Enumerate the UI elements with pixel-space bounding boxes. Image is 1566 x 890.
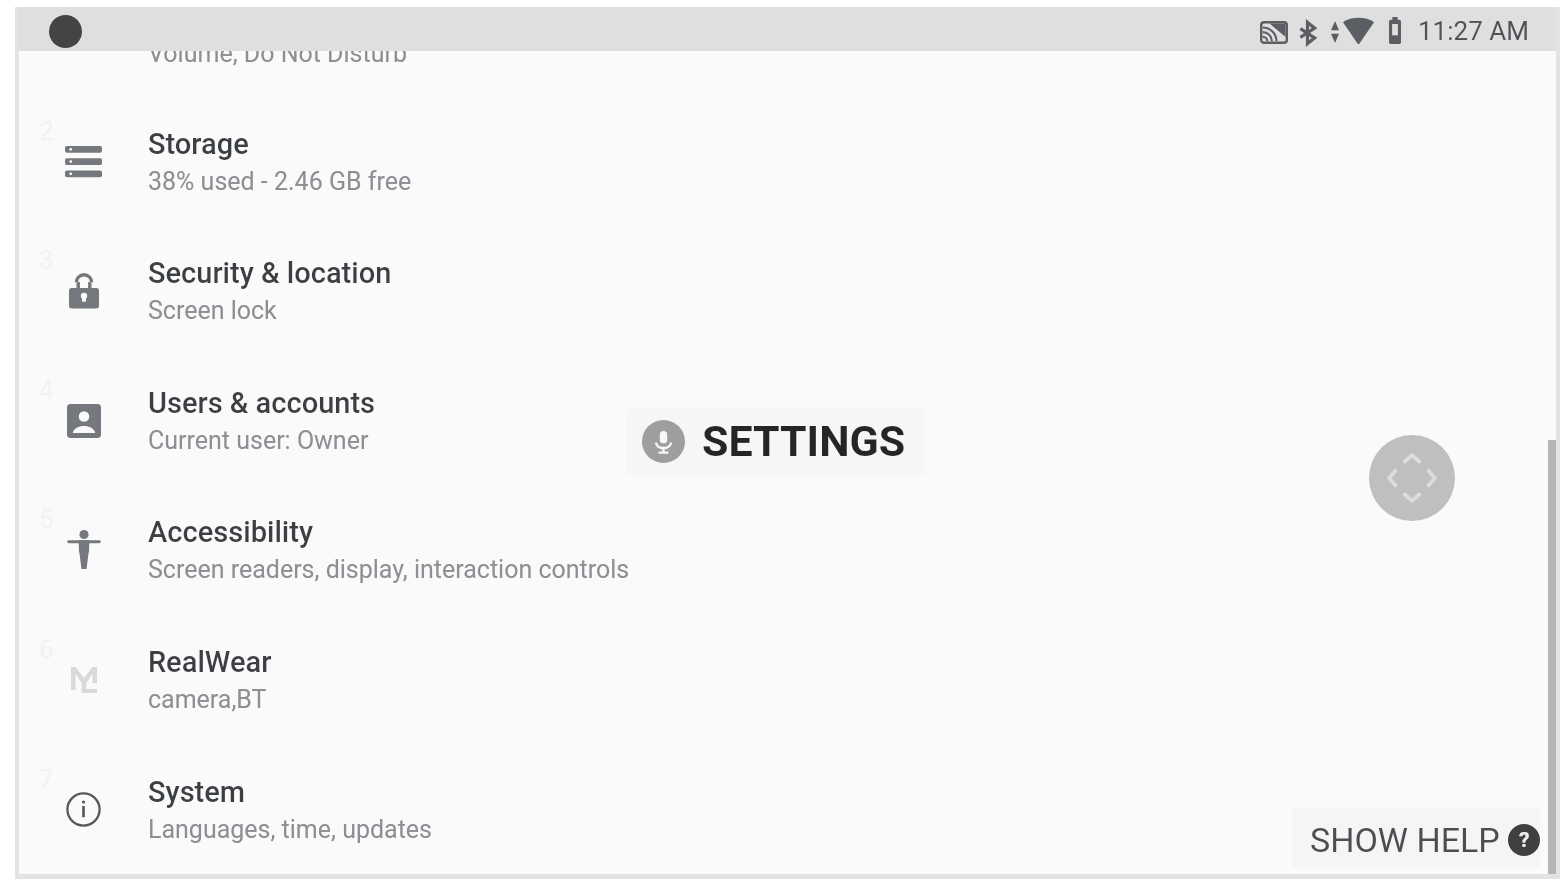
button[interactable]: 2 — [19, 134, 1556, 264]
staticText: 5 — [39, 504, 54, 534]
staticText: 2 — [39, 116, 54, 146]
staticText: Accessibility — [148, 515, 313, 549]
staticText: 4 — [39, 375, 54, 405]
staticText: System — [148, 775, 246, 809]
staticText: Security & location — [148, 256, 392, 290]
button[interactable]: 6 — [19, 652, 1556, 782]
button[interactable]: SETTINGS — [642, 416, 906, 466]
staticText: 38% used - 2.46 GB free — [148, 167, 412, 196]
staticText: Screen readers, display, interaction con… — [148, 555, 630, 584]
button[interactable]: Navigation pad — [1369, 435, 1455, 521]
staticText: camera,BT — [148, 685, 267, 714]
staticText: SHOW HELP — [1310, 820, 1500, 860]
staticText: Volume, Do Not Disturb — [148, 39, 407, 68]
staticText: Languages, time, updates — [148, 815, 433, 844]
button[interactable]: 7 — [19, 782, 1556, 874]
staticText: RealWear — [148, 645, 272, 679]
button[interactable]: Profile — [49, 15, 82, 48]
staticText: 6 — [39, 634, 54, 664]
button[interactable]: SHOW HELP — [1310, 813, 1540, 867]
staticText: 11:27 AM — [1418, 16, 1529, 46]
staticText: SETTINGS — [702, 416, 906, 466]
button[interactable]: 5 — [19, 522, 1556, 652]
staticText: Screen lock — [148, 296, 277, 325]
staticText: Storage — [148, 127, 249, 161]
staticText: 3 — [39, 245, 54, 275]
button[interactable]: 3 — [19, 263, 1556, 393]
staticText: Current user: Owner — [148, 426, 369, 455]
button[interactable]: 4 — [19, 393, 1556, 523]
staticText: Users & accounts — [148, 386, 376, 420]
staticText: ? — [1519, 828, 1530, 853]
